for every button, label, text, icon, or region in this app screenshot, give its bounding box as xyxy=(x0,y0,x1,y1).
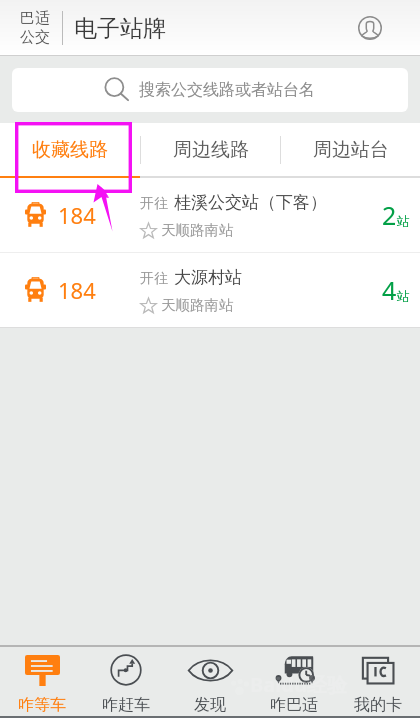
staticText: 站 xyxy=(397,288,410,304)
button[interactable]: 咋等车 xyxy=(0,647,84,716)
button[interactable]: 我的卡 xyxy=(336,647,420,716)
staticText: 收藏线路 xyxy=(32,138,108,162)
button[interactable]: 184 xyxy=(0,253,420,327)
staticText: 开往 xyxy=(140,195,168,213)
button[interactable]: 咋赶车 xyxy=(84,647,168,716)
button[interactable]: 咋巴适 xyxy=(252,647,336,716)
staticText: 公交 xyxy=(20,28,50,47)
staticText: 巴适 xyxy=(20,9,50,28)
staticText: 天顺路南站 xyxy=(161,296,234,314)
staticText: 2 xyxy=(382,198,397,232)
staticText: 我的卡 xyxy=(354,695,402,715)
staticText: Baidu经验 xyxy=(250,671,347,698)
staticText: 咋赶车 xyxy=(102,695,150,715)
staticText: 184 xyxy=(58,275,96,305)
staticText: 搜索公交线路或者站台名 xyxy=(139,80,315,100)
button[interactable]: 周边线路 xyxy=(141,123,280,176)
button[interactable]: 发现 xyxy=(168,647,252,716)
staticText: 开往 xyxy=(140,270,168,288)
staticText: 发现 xyxy=(194,695,226,715)
staticText: 桂溪公交站（下客） xyxy=(174,192,327,213)
staticText: 周边站台 xyxy=(313,138,389,162)
button[interactable]: 周边站台 xyxy=(281,123,420,176)
staticText: 天顺路南站 xyxy=(161,221,234,239)
staticText: 电子站牌 xyxy=(74,14,166,43)
staticText: 咋等车 xyxy=(18,695,66,715)
button[interactable]: Profile xyxy=(348,6,392,50)
staticText: 周边线路 xyxy=(173,138,249,162)
button[interactable]: 184 xyxy=(0,178,420,252)
button[interactable]: 搜索公交线路或者站台名 xyxy=(12,68,408,112)
staticText: 大源村站 xyxy=(174,267,242,288)
staticText: 站 xyxy=(397,213,410,229)
button[interactable]: 收藏线路 xyxy=(0,123,140,176)
staticText: 184 xyxy=(58,200,96,230)
staticText: 4 xyxy=(382,273,397,307)
staticText: 咋巴适 xyxy=(270,695,318,715)
